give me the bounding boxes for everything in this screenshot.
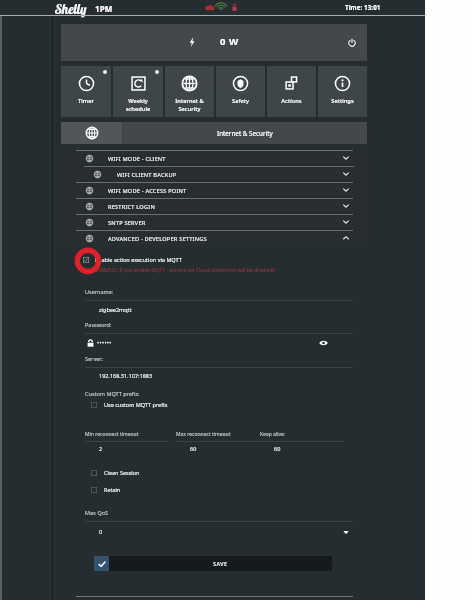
- button[interactable]: Retain: [91, 484, 171, 496]
- staticText: Retain: [104, 486, 121, 493]
- staticText: Username:: [85, 288, 114, 295]
- staticText: Shelly: [55, 1, 87, 17]
- button[interactable]: SAVE: [94, 556, 332, 571]
- staticText: Internet & Security: [217, 129, 273, 138]
- staticText: Settings: [318, 97, 367, 105]
- staticText: WIFI CLIENT BACKUP: [117, 171, 177, 179]
- button[interactable]: Weekly schedule: [113, 66, 163, 117]
- button[interactable]: Clean Session: [91, 467, 171, 479]
- staticText: RESTRICT LOGIN: [108, 203, 155, 211]
- staticText: zigbee2mqtt: [99, 306, 132, 313]
- button[interactable]: Actions: [267, 66, 316, 117]
- staticText: SAVE: [213, 560, 228, 567]
- staticText: 1PM: [95, 3, 113, 14]
- staticText: Max reconnect timeout: [176, 431, 231, 438]
- staticText: Custom MQTT prefix:: [85, 390, 140, 397]
- staticText: ADVANCED - DEVELOPER SETTINGS: [108, 235, 207, 243]
- staticText: Server:: [85, 355, 104, 362]
- button[interactable]: ADVANCED - DEVELOPER SETTINGS: [61, 230, 367, 246]
- staticText: Use custom MQTT prefix: [104, 401, 168, 408]
- staticText: 0: [99, 528, 103, 535]
- button[interactable]: Power toggle: [343, 34, 361, 52]
- button[interactable]: Settings: [318, 66, 367, 117]
- staticText: Clean Session: [104, 469, 140, 476]
- button[interactable]: 0: [85, 524, 353, 540]
- button[interactable]: Use custom MQTT prefix: [91, 399, 211, 411]
- staticText: 0 W: [220, 35, 239, 48]
- staticText: Safety: [216, 97, 265, 105]
- staticText: Enable action execution via MQTT: [95, 256, 182, 263]
- staticText: Weekly schedule: [113, 97, 163, 112]
- button[interactable]: WIFI MODE - CLIENT: [61, 150, 367, 166]
- staticText: SNTP SERVER: [108, 219, 146, 227]
- staticText: Max QoS: [85, 509, 109, 516]
- staticText: 60: [274, 445, 281, 452]
- button[interactable]: Enable action execution via MQTT: [82, 254, 212, 266]
- button[interactable]: Internet & Security: [61, 122, 367, 144]
- button[interactable]: RESTRICT LOGIN: [61, 198, 367, 214]
- button[interactable]: WIFI MODE - ACCESS POINT: [61, 182, 367, 198]
- button[interactable]: Safety: [216, 66, 265, 117]
- staticText: Keep alive:: [260, 431, 286, 438]
- staticText: Min reconnect timeout: [85, 431, 139, 438]
- button[interactable]: Timer: [61, 66, 111, 117]
- button[interactable]: Show password: [317, 337, 329, 349]
- button[interactable]: SNTP SERVER: [61, 214, 367, 230]
- button[interactable]: WIFI CLIENT BACKUP: [61, 166, 367, 182]
- staticText: WIFI MODE - ACCESS POINT: [108, 187, 187, 195]
- staticText: 192.168.31.107:1883: [99, 372, 153, 379]
- staticText: 2: [99, 445, 103, 452]
- staticText: ••••••: [97, 339, 112, 346]
- staticText: Password:: [85, 321, 112, 328]
- staticText: Internet & Security: [165, 97, 214, 112]
- staticText: Time: 13:01: [345, 3, 381, 11]
- button[interactable]: Internet & Security: [165, 66, 214, 117]
- staticText: Timer: [61, 97, 111, 105]
- staticText: WIFI MODE - CLIENT: [108, 155, 166, 163]
- staticText: 60: [190, 445, 197, 452]
- staticText: Actions: [267, 97, 316, 105]
- staticText: WARNING: If you enable MQTT - actions vi…: [93, 267, 276, 274]
